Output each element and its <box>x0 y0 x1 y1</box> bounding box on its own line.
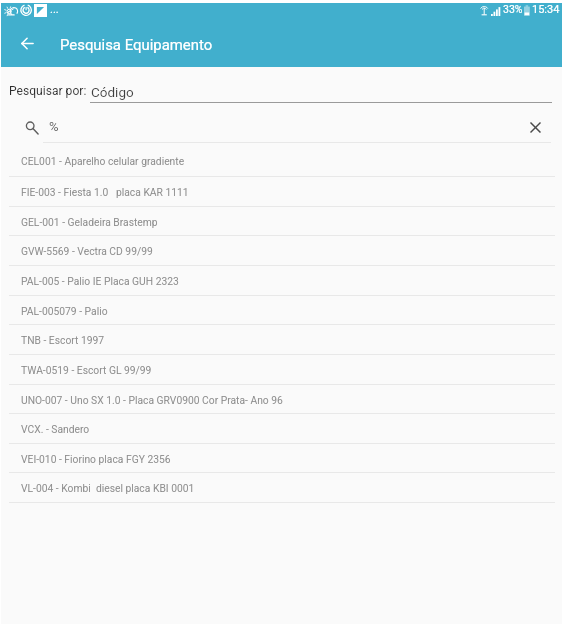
staticText: PAL-005 - Palio IE Placa GUH 2323 <box>21 275 179 287</box>
staticText: PAL-005079 - Palio <box>21 305 108 317</box>
button[interactable]: VL-004 - Kombi diesel placa KBI 0001 <box>0 473 564 503</box>
staticText: VCX. - Sandero <box>21 423 90 435</box>
staticText: Pesquisa Equipamento <box>60 36 213 53</box>
staticText: GEL-001 - Geladeira Brastemp <box>21 216 158 228</box>
button[interactable]: Clear <box>525 117 545 137</box>
staticText: VL-004 - Kombi diesel placa KBI 0001 <box>21 482 195 494</box>
button[interactable]: Back <box>6 22 48 64</box>
staticText: FIE-003 - Fiesta 1.0 placa KAR 1111 <box>21 186 189 198</box>
button[interactable]: FIE-003 - Fiesta 1.0 placa KAR 1111 <box>0 177 564 207</box>
button[interactable]: Código <box>90 84 134 100</box>
staticText: % <box>49 119 59 134</box>
staticText: Pesquisar por: <box>9 84 87 98</box>
staticText: 15:34 <box>532 3 560 16</box>
staticText: CEL001 - Aparelho celular gradiente <box>21 155 185 167</box>
button[interactable]: PAL-005079 - Palio <box>0 296 564 325</box>
button[interactable]: TWA-0519 - Escort GL 99/99 <box>0 355 564 385</box>
staticText: Código <box>91 84 134 100</box>
button[interactable]: PAL-005 - Palio IE Placa GUH 2323 <box>0 266 564 296</box>
button[interactable]: TNB - Escort 1997 <box>0 325 564 355</box>
button[interactable]: GEL-001 - Geladeira Brastemp <box>0 207 564 236</box>
staticText: VEI-010 - Fiorino placa FGY 2356 <box>21 453 171 465</box>
staticText: GVW-5569 - Vectra CD 99/99 <box>21 245 153 257</box>
staticText: 33% <box>503 3 523 15</box>
button[interactable]: CEL001 - Aparelho celular gradiente <box>0 144 564 177</box>
button[interactable]: UNO-007 - Uno SX 1.0 - Placa GRV0900 Cor… <box>0 385 564 414</box>
staticText: ... <box>50 3 59 16</box>
button[interactable]: GVW-5569 - Vectra CD 99/99 <box>0 236 564 266</box>
staticText: TNB - Escort 1997 <box>21 334 105 346</box>
staticText: UNO-007 - Uno SX 1.0 - Placa GRV0900 Cor… <box>21 394 283 406</box>
button[interactable]: Search <box>21 116 43 138</box>
button[interactable]: VEI-010 - Fiorino placa FGY 2356 <box>0 444 564 473</box>
button[interactable]: VCX. - Sandero <box>0 414 564 444</box>
staticText: TWA-0519 - Escort GL 99/99 <box>21 364 152 376</box>
